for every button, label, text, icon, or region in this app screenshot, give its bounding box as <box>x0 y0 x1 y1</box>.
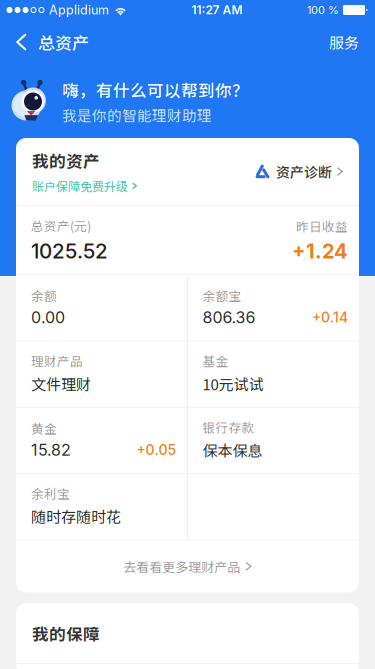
staticText: 基金 <box>202 352 228 370</box>
staticText: 1025.52 <box>31 239 108 263</box>
staticText: 我的保障 <box>32 621 100 645</box>
staticText: 保本保息 <box>202 439 262 461</box>
button[interactable]: 基金 <box>187 341 359 407</box>
button[interactable]: 资产诊断 <box>255 161 343 182</box>
staticText: 余额 <box>31 287 57 305</box>
staticText: 100 % <box>307 3 339 17</box>
staticText: 黄金 <box>31 419 57 437</box>
button[interactable]: 余额 <box>16 275 187 341</box>
staticText: 文件理财 <box>31 373 91 394</box>
button[interactable]: 总资产 <box>0 24 89 60</box>
staticText: 我是你的智能理财助理 <box>62 104 212 125</box>
staticText: 15.82 <box>31 440 71 460</box>
staticText: 余额宝 <box>202 287 241 305</box>
staticText: 总资产(元) <box>31 217 91 235</box>
staticText: 昨日收益 <box>296 217 348 235</box>
staticText: Applidium <box>49 2 109 17</box>
staticText: +0.05 <box>136 441 176 458</box>
button[interactable]: 黄金 <box>16 408 187 473</box>
staticText: +1.24 <box>292 239 348 263</box>
button[interactable]: 银行存款 <box>187 408 359 473</box>
staticText: 随时存随时花 <box>31 505 121 527</box>
staticText: 10元试试 <box>202 373 263 394</box>
button[interactable]: 服务 <box>329 25 375 59</box>
button[interactable]: 去看看更多理财产品 <box>16 540 359 592</box>
staticText: 账户保障免费升级 <box>32 177 128 195</box>
staticText: 总资产 <box>38 30 89 54</box>
staticText: 我的资产 <box>32 148 100 172</box>
staticText: 理财产品 <box>31 352 83 370</box>
button[interactable]: 余利宝 <box>16 474 187 539</box>
button[interactable]: 余额宝 <box>187 275 359 341</box>
staticText: 资产诊断 <box>276 161 332 182</box>
staticText: 余利宝 <box>31 484 70 502</box>
button[interactable]: 理财产品 <box>16 341 187 407</box>
button[interactable]: 账户保障免费升级 <box>32 177 137 195</box>
staticText: 服务 <box>329 31 359 53</box>
staticText: 嗨，有什么可以帮到你？ <box>62 78 249 101</box>
staticText: 806.36 <box>202 308 255 327</box>
staticText: 11:27 AM <box>191 3 242 17</box>
staticText: +0.14 <box>312 309 348 326</box>
staticText: 0.00 <box>31 308 65 327</box>
staticText: 银行存款 <box>202 418 254 436</box>
staticText: 去看看更多理财产品 <box>123 557 240 576</box>
